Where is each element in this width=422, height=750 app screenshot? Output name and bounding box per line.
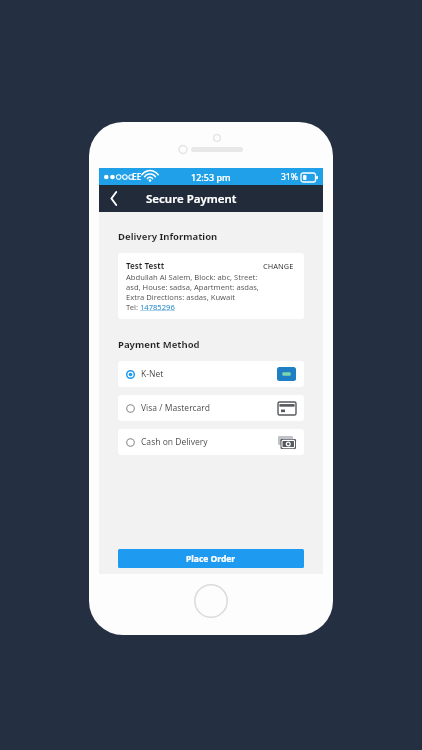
button[interactable]: Test Testt	[118, 253, 304, 319]
button[interactable]: Back	[99, 185, 129, 212]
staticText: Cash on Delivery	[141, 436, 208, 448]
button[interactable]: K-Net	[118, 361, 304, 387]
staticText: Place Order	[186, 553, 236, 565]
staticText: Secure Payment	[146, 191, 237, 207]
staticText: 12:53 pm	[191, 171, 231, 183]
button[interactable]: 14785296	[140, 302, 175, 312]
staticText: CHANGE	[263, 261, 294, 271]
staticText: Tel:	[126, 302, 140, 312]
button[interactable]: Cash on Delivery	[118, 429, 304, 455]
staticText: 31%	[281, 171, 298, 183]
staticText: Test Testt	[126, 260, 165, 271]
staticText: EE	[132, 171, 142, 183]
button[interactable]: Place Order	[118, 549, 304, 568]
staticText: Visa / Mastercard	[141, 402, 210, 414]
button[interactable]: CHANGE	[261, 260, 296, 272]
staticText: Abdullah Al Salem, Block: abc, Street: a…	[126, 272, 259, 302]
staticText: K-Net	[141, 368, 164, 380]
staticText: Payment Method	[118, 338, 200, 351]
button[interactable]: Visa / Mastercard	[118, 395, 304, 421]
staticText: Delivery Information	[118, 230, 218, 243]
